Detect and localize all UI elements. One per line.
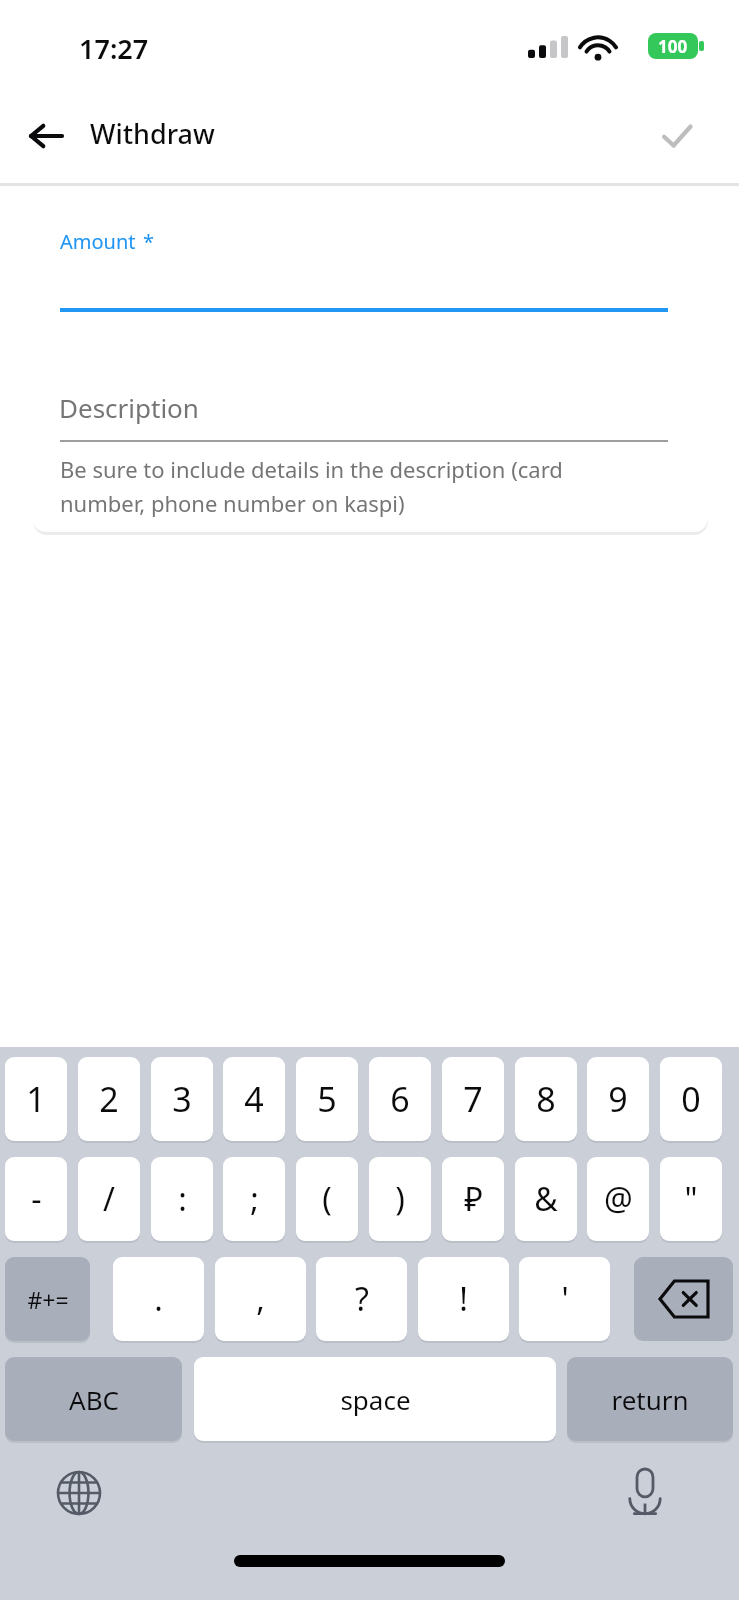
button[interactable]: ; <box>223 1157 285 1241</box>
button[interactable]: / <box>78 1157 140 1241</box>
button[interactable]: 1 <box>5 1057 67 1141</box>
staticText: . <box>154 1277 163 1321</box>
staticText: 100 <box>658 35 688 58</box>
staticText: ' <box>561 1277 569 1321</box>
button[interactable]: 9 <box>587 1057 649 1141</box>
staticText: 4 <box>244 1076 264 1122</box>
staticText: Withdraw <box>90 115 215 152</box>
button[interactable]: #+= <box>5 1257 90 1341</box>
staticText: * <box>143 228 155 255</box>
staticText: Be sure to include details in the descri… <box>60 454 680 519</box>
button[interactable]: ( <box>296 1157 358 1241</box>
button[interactable]: Change keyboard language <box>48 1462 110 1524</box>
staticText: , <box>256 1277 265 1321</box>
button[interactable]: ₽ <box>442 1157 504 1241</box>
button[interactable]: 0 <box>660 1057 722 1141</box>
staticText: 1 <box>26 1076 46 1122</box>
staticText: 7 <box>463 1076 483 1122</box>
staticText: 17:27 <box>79 30 149 67</box>
staticText: " <box>684 1177 698 1221</box>
button[interactable]: , <box>215 1257 306 1341</box>
staticText: ; <box>250 1177 259 1221</box>
staticText: ? <box>355 1277 369 1321</box>
button[interactable]: ? <box>316 1257 407 1341</box>
staticText: 8 <box>536 1076 556 1122</box>
staticText: 2 <box>99 1076 119 1122</box>
button[interactable]: @ <box>587 1157 649 1241</box>
staticText: 9 <box>608 1076 628 1122</box>
button[interactable]: & <box>515 1157 577 1241</box>
button[interactable]: 8 <box>515 1057 577 1141</box>
button[interactable]: 4 <box>223 1057 285 1141</box>
button[interactable]: ) <box>369 1157 431 1241</box>
button[interactable]: Voice input <box>614 1462 676 1524</box>
button[interactable]: 2 <box>78 1057 140 1141</box>
staticText: return <box>611 1382 689 1417</box>
staticText: : <box>178 1177 187 1221</box>
button[interactable]: . <box>113 1257 204 1341</box>
staticText: 5 <box>317 1076 337 1122</box>
button[interactable]: Confirm <box>645 104 709 168</box>
button[interactable]: " <box>660 1157 722 1241</box>
staticText: 3 <box>172 1076 192 1122</box>
button[interactable]: space <box>194 1357 556 1441</box>
button[interactable]: ' <box>519 1257 610 1341</box>
staticText: #+= <box>27 1284 69 1315</box>
staticText: ) <box>395 1177 405 1221</box>
button[interactable]: ABC <box>5 1357 182 1441</box>
button[interactable]: : <box>151 1157 213 1241</box>
button[interactable]: Backspace <box>634 1257 733 1341</box>
button[interactable]: Back <box>14 104 78 168</box>
button[interactable]: 5 <box>296 1057 358 1141</box>
button[interactable]: 7 <box>442 1057 504 1141</box>
button[interactable]: - <box>5 1157 67 1241</box>
staticText: ! <box>459 1277 468 1321</box>
button[interactable]: ! <box>418 1257 509 1341</box>
staticText: ( <box>322 1177 332 1221</box>
staticText: 0 <box>681 1076 701 1122</box>
staticText: space <box>340 1382 411 1417</box>
button[interactable]: return <box>567 1357 733 1441</box>
staticText: Amount <box>60 228 136 255</box>
staticText: ABC <box>69 1382 119 1417</box>
staticText: - <box>31 1177 42 1221</box>
staticText: ₽ <box>464 1177 483 1221</box>
staticText: @ <box>604 1177 633 1221</box>
button[interactable]: 6 <box>369 1057 431 1141</box>
staticText: / <box>103 1177 115 1221</box>
staticText: 6 <box>390 1076 410 1122</box>
staticText: Description <box>59 390 199 425</box>
button[interactable]: 3 <box>151 1057 213 1141</box>
staticText: & <box>534 1177 558 1221</box>
